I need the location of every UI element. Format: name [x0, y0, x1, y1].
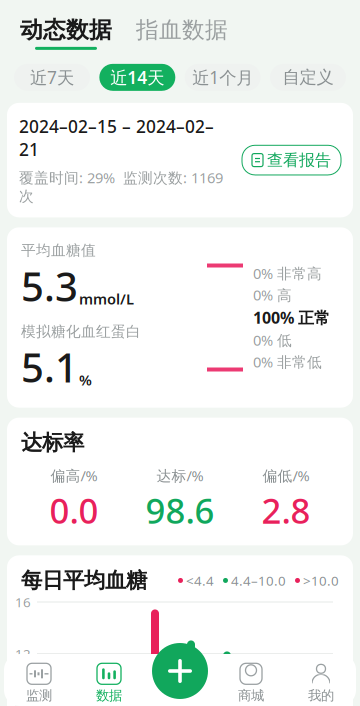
staticText: <4.4 — [186, 572, 214, 589]
button[interactable]: Add — [152, 643, 208, 699]
staticText: mmol/L — [79, 289, 134, 308]
staticText: 指血数据 — [136, 16, 228, 44]
staticText: 近1个月 — [192, 66, 253, 89]
button[interactable]: 自定义 — [270, 64, 346, 91]
staticText: 数据 — [96, 687, 122, 704]
staticText: 近14天 — [110, 66, 164, 89]
staticText: 偏低/% — [262, 466, 309, 485]
staticText: 监测 — [26, 687, 52, 704]
staticText: 5.3 — [21, 259, 78, 312]
staticText: 16 — [15, 593, 31, 611]
button[interactable]: 数据 — [74, 656, 144, 704]
staticText: 0.0 — [49, 487, 98, 533]
staticText: 近7天 — [30, 66, 74, 89]
staticText: >10.0 — [303, 572, 339, 589]
staticText: % — [79, 370, 92, 390]
staticText: 自定义 — [282, 67, 333, 88]
staticText: 4.4–10.0 — [231, 572, 286, 589]
staticText: 0% 高 — [253, 285, 292, 305]
staticText: 动态数据 — [20, 16, 112, 44]
staticText: 达标/% — [156, 466, 203, 485]
staticText: 平均血糖值 — [21, 241, 96, 259]
staticText: 0% 非常低 — [253, 352, 322, 371]
staticText: 98.6 — [145, 487, 214, 533]
staticText: 0% 低 — [253, 330, 292, 350]
staticText: 0% 非常高 — [253, 263, 322, 283]
staticText: 偏高/% — [50, 466, 97, 485]
button[interactable]: 近14天 — [99, 64, 175, 91]
staticText: 达标率 — [21, 430, 84, 456]
staticText: 我的 — [308, 687, 334, 704]
button[interactable]: 指血数据 — [136, 16, 228, 50]
staticText: 5.1 — [21, 340, 78, 394]
button[interactable]: 近7天 — [14, 64, 90, 91]
button[interactable]: 动态数据 — [20, 16, 112, 50]
staticText: 12 — [15, 645, 31, 663]
staticText: 2024–02–15 – 2024–02–21 — [19, 115, 214, 161]
staticText: 2.8 — [261, 487, 310, 533]
button[interactable]: 查看报告 — [242, 145, 341, 175]
staticText: 查看报告 — [267, 150, 331, 170]
button[interactable]: 商城 — [216, 656, 286, 704]
staticText: 100% 正常 — [253, 307, 330, 328]
staticText: 商城 — [238, 687, 264, 704]
staticText: 覆盖时间: 29% 监测次数: 1169 次 — [19, 168, 223, 205]
staticText: 每日平均血糖 — [21, 567, 147, 594]
button[interactable]: 我的 — [286, 656, 356, 704]
button[interactable]: 监测 — [4, 656, 74, 704]
staticText: 模拟糖化血红蛋白 — [21, 322, 141, 340]
button[interactable]: 近1个月 — [185, 64, 261, 91]
